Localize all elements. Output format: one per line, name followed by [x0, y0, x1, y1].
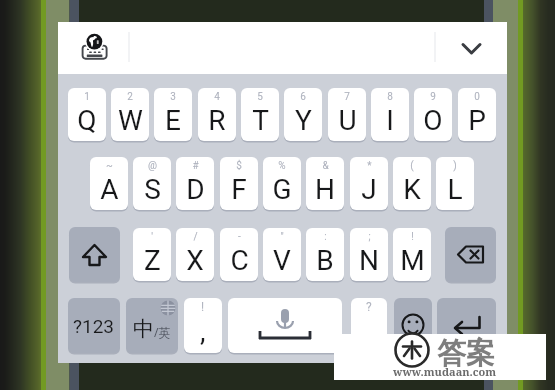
staticText: T	[252, 104, 269, 137]
staticText: O	[423, 104, 443, 137]
staticText: 1	[84, 91, 90, 103]
button[interactable]: ;	[350, 228, 388, 281]
staticText: ;	[368, 231, 371, 243]
staticText: J	[361, 173, 377, 206]
staticText: R	[208, 104, 226, 137]
button[interactable]: Enter	[437, 298, 496, 353]
staticText: ?123	[73, 315, 115, 337]
button[interactable]: Shift	[69, 227, 120, 282]
button[interactable]: 5	[241, 88, 279, 141]
button[interactable]: 1	[68, 88, 106, 141]
button[interactable]: (	[393, 157, 431, 210]
staticText: Q	[77, 104, 97, 137]
staticText: 3	[170, 91, 176, 103]
staticText: -	[238, 231, 241, 243]
staticText: C	[230, 244, 249, 277]
staticText: :	[324, 231, 327, 243]
staticText: ,	[200, 315, 206, 348]
button[interactable]: 0	[458, 88, 496, 141]
staticText: A	[100, 173, 119, 206]
button[interactable]: Space	[228, 298, 342, 353]
staticText: U	[338, 104, 357, 137]
button[interactable]: $	[220, 157, 258, 210]
button[interactable]: @	[133, 157, 171, 210]
staticText: L	[447, 173, 463, 206]
button[interactable]: #	[176, 157, 214, 210]
staticText: 8	[387, 91, 393, 103]
button[interactable]: 6	[284, 88, 322, 141]
button[interactable]: Switch input language	[82, 33, 110, 61]
staticText: 7	[344, 91, 350, 103]
button[interactable]: Hide keyboard	[454, 34, 488, 68]
staticText: E	[165, 104, 181, 137]
button[interactable]: )	[436, 157, 474, 210]
button[interactable]: !	[393, 228, 431, 281]
staticText: '	[151, 231, 153, 243]
staticText: *	[367, 160, 372, 172]
staticText: %	[278, 160, 286, 172]
staticText: 6	[300, 91, 306, 103]
staticText: M	[400, 244, 425, 277]
staticText: S	[144, 173, 161, 206]
staticText: I	[386, 104, 394, 137]
staticText: ?	[366, 300, 372, 314]
staticText: @	[148, 160, 157, 172]
button[interactable]: 7	[328, 88, 366, 141]
staticText: Y	[295, 104, 312, 137]
button[interactable]: 中	[126, 298, 178, 353]
button[interactable]: /	[176, 228, 214, 281]
staticText: !	[201, 300, 205, 314]
staticText: )	[453, 160, 457, 172]
staticText: P	[468, 104, 486, 137]
staticText: 中	[133, 316, 154, 342]
staticText: V	[273, 244, 291, 277]
staticText: W	[118, 104, 143, 137]
button[interactable]: :	[306, 228, 344, 281]
staticText: !	[411, 231, 414, 243]
button[interactable]: 3	[154, 88, 192, 141]
staticText: 5	[257, 91, 263, 103]
staticText: F	[231, 173, 247, 206]
staticText: "	[280, 231, 284, 243]
button[interactable]: 8	[371, 88, 409, 141]
staticText: N	[359, 244, 379, 277]
staticText: K	[403, 173, 421, 206]
staticText: &	[322, 160, 329, 172]
staticText: D	[186, 173, 205, 206]
button[interactable]: ~	[90, 157, 128, 210]
button[interactable]: 2	[111, 88, 149, 141]
button[interactable]: -	[220, 228, 258, 281]
button[interactable]: 4	[198, 88, 236, 141]
staticText: ~	[106, 160, 113, 172]
staticText: /	[193, 231, 198, 243]
staticText: #	[192, 160, 199, 172]
staticText: 9	[430, 91, 436, 103]
button[interactable]: "	[263, 228, 301, 281]
button[interactable]: %	[263, 157, 301, 210]
button[interactable]: &	[306, 157, 344, 210]
button[interactable]: Backspace	[445, 227, 496, 282]
button[interactable]: *	[350, 157, 388, 210]
button[interactable]: 9	[414, 88, 452, 141]
staticText: X	[186, 244, 204, 277]
button[interactable]: '	[133, 228, 171, 281]
button[interactable]: ?	[351, 298, 387, 353]
button[interactable]: ?123	[68, 298, 120, 353]
staticText: 0	[474, 91, 480, 103]
staticText: www.mudaan.com	[393, 364, 497, 379]
staticText: /英	[154, 324, 171, 340]
button[interactable]: Emoji	[394, 298, 432, 353]
staticText: (	[410, 160, 414, 172]
staticText: 2	[127, 91, 133, 103]
staticText: 4	[214, 91, 220, 103]
staticText: G	[272, 173, 292, 206]
staticText: H	[315, 173, 335, 206]
button[interactable]: !	[184, 298, 222, 353]
staticText: 答案	[437, 335, 495, 372]
staticText: Z	[144, 244, 161, 277]
staticText: $	[236, 160, 242, 172]
staticText: B	[316, 244, 334, 277]
